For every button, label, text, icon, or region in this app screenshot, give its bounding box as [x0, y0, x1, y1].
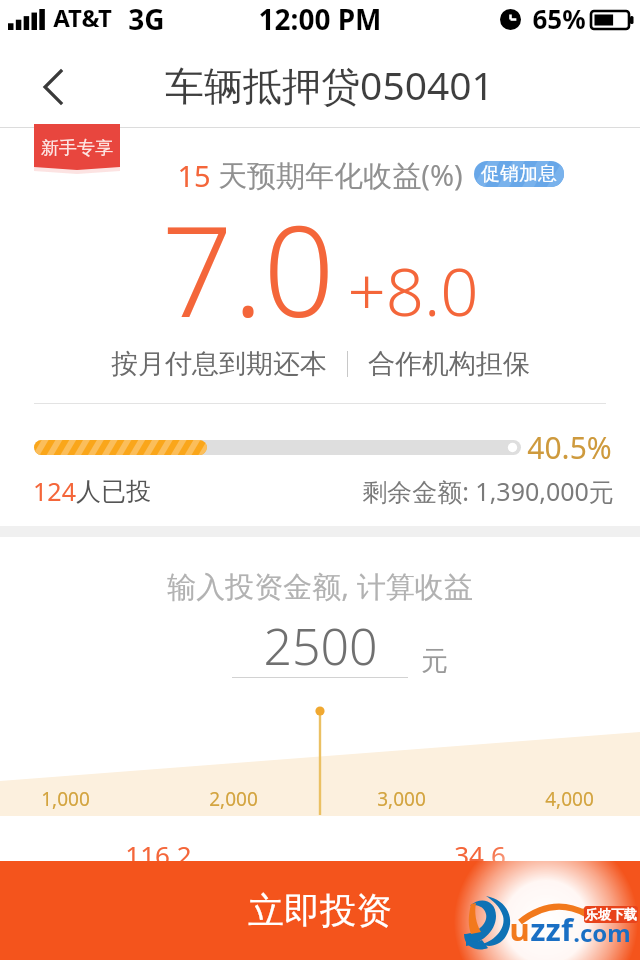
staticText: 输入投资金额, 计算收益 [167, 566, 473, 606]
staticText: 7.0 [161, 183, 335, 353]
staticText: u [509, 908, 530, 950]
button[interactable]: 促销加息 [474, 161, 564, 187]
staticText: 3G [128, 0, 165, 38]
staticText: 天预期年化收益(%) [218, 155, 463, 195]
staticText: .com [573, 916, 631, 949]
staticText: 116.2 [125, 837, 192, 872]
staticText: AT&T [53, 1, 112, 34]
staticText: 15 [177, 156, 211, 195]
staticText: 剩余金额: 1,390,000元 [362, 474, 614, 508]
button[interactable]: 立即投资 [0, 861, 640, 960]
staticText: 新手专享 [41, 137, 113, 160]
staticText: 34.6 [454, 837, 506, 872]
staticText: 元 [421, 644, 448, 678]
staticText: f [561, 908, 573, 950]
staticText: 促销加息 [481, 162, 557, 186]
staticText: 人已投 [76, 476, 151, 507]
staticText: 12:00 PM [258, 0, 382, 38]
staticText: 乐坡下载 [585, 906, 637, 922]
staticText: +8.0 [347, 244, 479, 335]
staticText: 40.5% [527, 427, 612, 468]
staticText: 立即投资 [248, 888, 392, 933]
staticText: 车辆抵押贷050401 [165, 58, 494, 111]
staticText: 65% [532, 1, 586, 36]
staticText: 合作机构担保 [368, 347, 530, 381]
staticText: 2500 [263, 612, 378, 680]
staticText: 1,000 [41, 786, 90, 812]
staticText: 2,000 [209, 786, 258, 812]
staticText: 3,000 [377, 786, 426, 812]
staticText: 4,000 [545, 786, 594, 812]
staticText: zz [530, 908, 561, 950]
staticText: 124 [33, 474, 76, 508]
button[interactable]: Back [0, 42, 84, 127]
staticText: 按月付息到期还本 [111, 347, 327, 381]
